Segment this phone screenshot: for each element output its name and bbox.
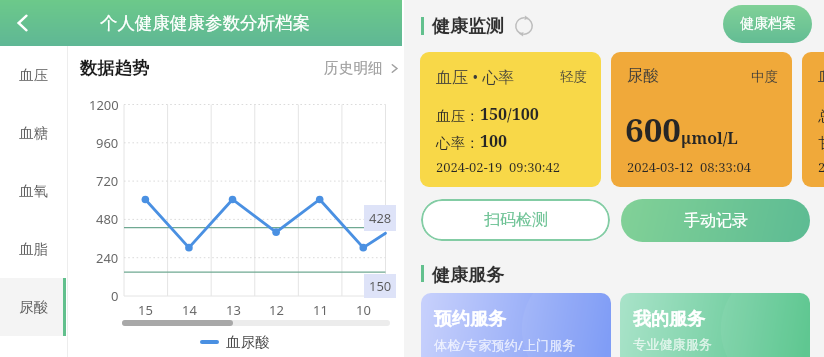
- staticText: 扫码检测: [484, 210, 548, 230]
- staticText: 历史明细: [324, 59, 383, 78]
- staticText: 甘油三酯：: [818, 134, 824, 152]
- staticText: 480: [96, 210, 119, 228]
- staticText: 血脂: [818, 66, 824, 86]
- staticText: 15: [138, 301, 153, 319]
- staticText: 血压 • 心率: [436, 66, 515, 88]
- staticText: 预约服务: [434, 308, 506, 331]
- staticText: 轻度: [560, 68, 587, 85]
- staticText: 血压: [19, 66, 48, 84]
- button[interactable]: 血糖: [0, 104, 66, 162]
- button[interactable]: Refresh: [515, 17, 533, 35]
- button[interactable]: 尿酸: [0, 278, 66, 336]
- staticText: 血糖: [19, 124, 48, 142]
- button[interactable]: 历史明细: [324, 59, 400, 78]
- button[interactable]: 扫码检测: [421, 199, 610, 241]
- staticText: 960: [96, 134, 119, 152]
- staticText: 数据趋势: [80, 57, 150, 79]
- staticText: 个人健康健康参数分析档案: [100, 12, 310, 34]
- staticText: 600: [625, 107, 681, 152]
- button[interactable]: 血压 • 心率: [420, 52, 601, 187]
- staticText: 健康服务: [432, 264, 504, 287]
- staticText: 专业健康服务: [633, 336, 713, 353]
- button[interactable]: 血脂: [0, 220, 66, 278]
- button[interactable]: 健康档案: [723, 5, 812, 43]
- button[interactable]: 手动记录: [621, 199, 810, 242]
- staticText: 11: [313, 301, 328, 319]
- staticText: 13: [226, 301, 241, 319]
- staticText: 100: [480, 130, 508, 152]
- staticText: 尿酸: [19, 298, 48, 316]
- staticText: 2024-03-12 08:33:04: [818, 158, 824, 176]
- staticText: μmol/L: [681, 127, 738, 149]
- staticText: 血脂: [19, 240, 48, 258]
- staticText: 健康档案: [740, 15, 796, 33]
- staticText: 健康监测: [432, 15, 504, 38]
- staticText: 10: [356, 301, 371, 319]
- staticText: 720: [96, 172, 119, 190]
- button[interactable]: 我的服务: [620, 293, 810, 357]
- staticText: 体检/专家预约/上门服务: [434, 336, 576, 354]
- staticText: 尿酸: [627, 66, 659, 86]
- staticText: 2024-02-19 09:30:42: [436, 158, 560, 176]
- staticText: 12: [269, 301, 284, 319]
- staticText: 0: [111, 287, 119, 305]
- staticText: 428: [369, 209, 392, 227]
- button[interactable]: 尿酸: [611, 52, 792, 187]
- staticText: 血尿酸: [226, 333, 270, 351]
- button[interactable]: 血脂: [802, 52, 824, 187]
- staticText: 血压：: [436, 107, 480, 125]
- staticText: 240: [96, 249, 119, 267]
- staticText: 心率：: [436, 134, 480, 152]
- button[interactable]: 血氧: [0, 162, 66, 220]
- staticText: 14: [182, 301, 197, 319]
- staticText: 血氧: [19, 182, 48, 200]
- staticText: 手动记录: [684, 211, 748, 231]
- staticText: 我的服务: [633, 308, 705, 331]
- staticText: 1200: [89, 96, 119, 114]
- button[interactable]: Back: [0, 0, 46, 46]
- button[interactable]: 血压: [0, 46, 66, 104]
- staticText: 150: [369, 277, 392, 295]
- staticText: 150/100: [480, 103, 539, 125]
- staticText: 总胆固醇：: [818, 107, 824, 125]
- button[interactable]: 预约服务: [421, 293, 611, 357]
- staticText: 中度: [751, 68, 778, 85]
- staticText: 2024-03-12 08:33:04: [627, 158, 751, 176]
